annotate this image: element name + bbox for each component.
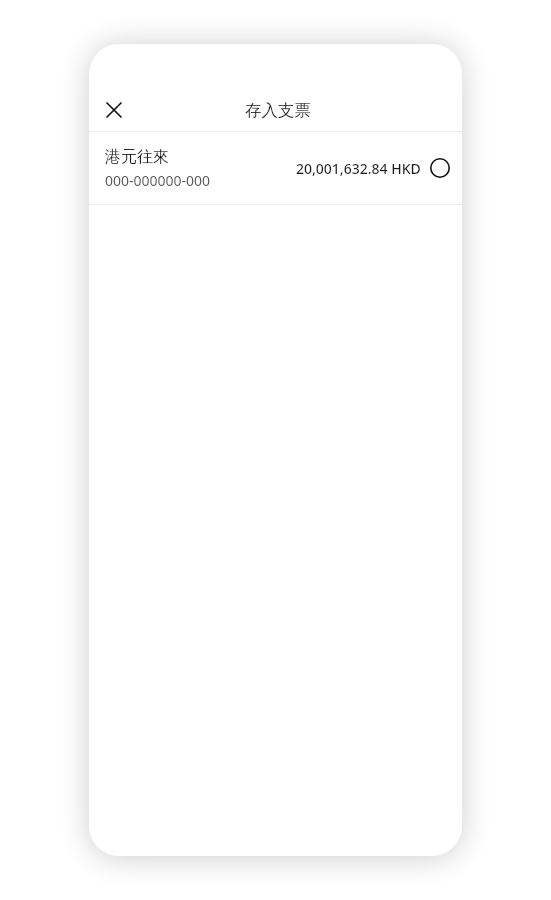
staticText: 存入支票 <box>245 100 311 121</box>
staticText: 港元往來 <box>105 147 169 167</box>
staticText: 000-000000-000 <box>105 171 211 190</box>
staticText: 20,001,632.84 HKD <box>296 159 421 178</box>
button[interactable]: 港元往來 <box>89 132 462 204</box>
other: Select account <box>430 158 450 178</box>
button[interactable]: Close <box>92 87 136 131</box>
